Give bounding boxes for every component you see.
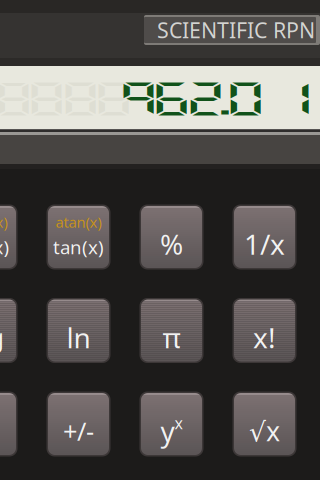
staticText: 1/x: [244, 225, 285, 263]
staticText: π: [162, 319, 180, 356]
staticText: ln: [66, 319, 90, 356]
button[interactable]: atan(x): [46, 204, 110, 269]
staticText: .: [222, 77, 225, 119]
staticText: asin(x): [0, 212, 7, 232]
staticText: 6: [159, 77, 185, 119]
staticText: %: [160, 225, 183, 263]
button[interactable]: √x: [232, 391, 296, 456]
staticText: 8: [34, 77, 60, 119]
button[interactable]: x!: [232, 298, 296, 363]
staticText: log: [0, 321, 4, 354]
button[interactable]: π: [139, 298, 203, 363]
button[interactable]: ln: [46, 298, 110, 363]
button[interactable]: log: [0, 298, 17, 363]
staticText: 8: [68, 77, 94, 119]
staticText: tan(x): [53, 235, 104, 259]
staticText: +/-: [63, 414, 94, 448]
button[interactable]: y: [139, 391, 203, 456]
staticText: atan(x): [55, 212, 101, 232]
staticText: x!: [253, 319, 276, 356]
button[interactable]: EE: [0, 391, 17, 456]
button[interactable]: SCIENTIFIC RPN: [144, 15, 320, 45]
button[interactable]: 1/x: [232, 204, 296, 269]
staticText: x: [174, 412, 182, 434]
staticText: 8: [101, 77, 127, 119]
button[interactable]: %: [139, 204, 203, 269]
button[interactable]: asin(x): [0, 204, 17, 269]
staticText: 2: [193, 77, 219, 119]
staticText: √x: [249, 413, 280, 449]
staticText: sin(x): [0, 235, 9, 259]
staticText: SCIENTIFIC RPN: [157, 16, 315, 44]
button[interactable]: +/-: [46, 391, 110, 456]
staticText: 0: [233, 77, 259, 119]
staticText: 1: [281, 77, 307, 119]
staticText: 8: [1, 77, 27, 119]
staticText: y: [160, 412, 174, 450]
staticText: 9: [126, 77, 152, 119]
